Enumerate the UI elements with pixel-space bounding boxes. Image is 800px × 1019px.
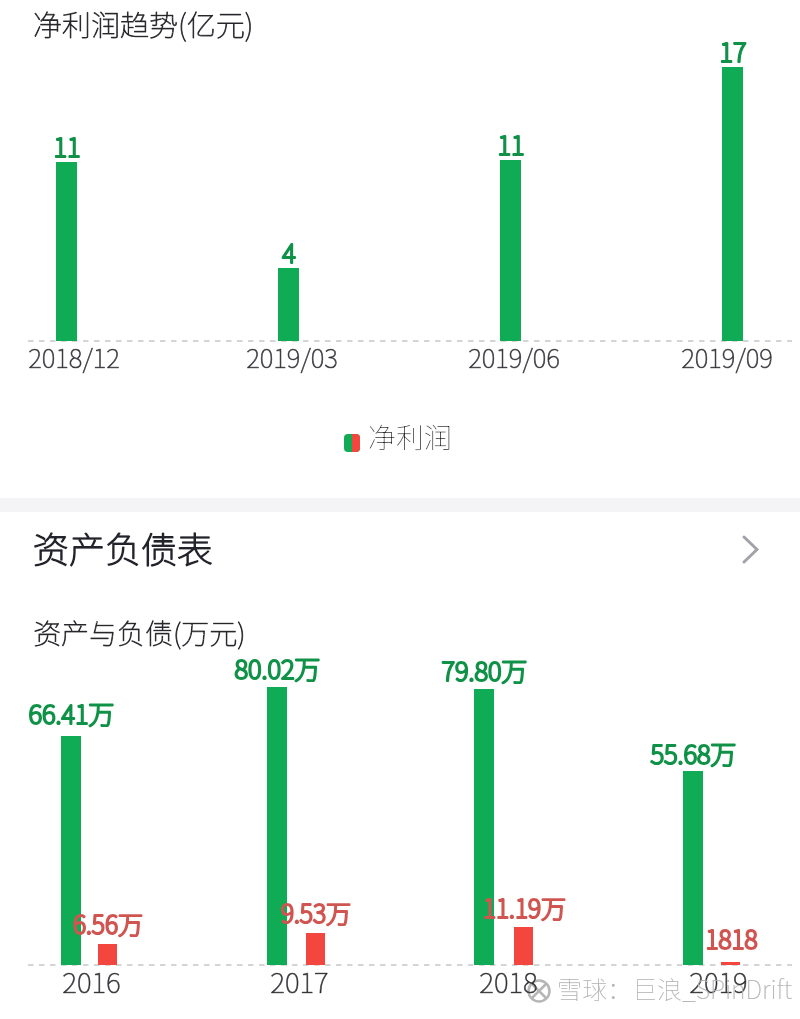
staticText: 资产与负债(万元): [33, 612, 246, 653]
staticText: 2016: [62, 961, 121, 1002]
staticText: 资产负债表: [33, 521, 214, 573]
staticText: 2018/12: [28, 338, 120, 376]
staticText: 11: [53, 127, 81, 165]
staticText: 6.56万: [73, 905, 143, 941]
staticText: 2017: [270, 961, 329, 1002]
staticText: 2019/09: [681, 338, 773, 376]
staticText: 2019/03: [246, 338, 338, 376]
staticText: 2018: [479, 961, 538, 1002]
staticText: 1818: [705, 920, 758, 956]
staticText: 雪球：巨浪_SPinDrift: [557, 970, 793, 1006]
staticText: 6.56万: [73, 905, 143, 941]
staticText: 2018: [479, 961, 538, 1002]
staticText: 2018/12: [28, 338, 120, 376]
staticText: 资产负债表: [33, 521, 214, 573]
staticText: 4: [282, 233, 296, 271]
staticText: 11: [53, 127, 81, 165]
staticText: 11: [497, 125, 525, 163]
staticText: 55.68万: [650, 734, 737, 772]
staticText: 2019/06: [468, 338, 560, 376]
staticText: 11: [497, 125, 525, 163]
staticText: 2016: [62, 961, 121, 1002]
staticText: 2019/03: [246, 338, 338, 376]
staticText: 2017: [270, 961, 329, 1002]
staticText: 55.68万: [650, 734, 737, 772]
staticText: 4: [282, 233, 296, 271]
staticText: 17: [719, 32, 747, 70]
staticText: 净利润: [368, 416, 453, 457]
staticText: 9.53万: [281, 894, 351, 930]
staticText: 净利润趋势(亿元): [33, 2, 254, 44]
staticText: 净利润趋势(亿元): [33, 2, 254, 44]
staticText: 79.80万: [441, 651, 528, 689]
staticText: 1818: [705, 920, 758, 956]
staticText: 2019: [689, 961, 748, 1002]
staticText: 80.02万: [234, 649, 321, 687]
staticText: 9.53万: [281, 894, 351, 930]
staticText: 11.19万: [483, 889, 566, 925]
staticText: 66.41万: [28, 694, 115, 732]
staticText: 80.02万: [234, 649, 321, 687]
staticText: 17: [719, 32, 747, 70]
staticText: 11.19万: [483, 889, 566, 925]
staticText: 资产与负债(万元): [33, 612, 246, 653]
staticText: 2019: [689, 961, 748, 1002]
staticText: 2019/06: [468, 338, 560, 376]
staticText: 79.80万: [441, 651, 528, 689]
staticText: 2019/09: [681, 338, 773, 376]
staticText: 66.41万: [28, 694, 115, 732]
